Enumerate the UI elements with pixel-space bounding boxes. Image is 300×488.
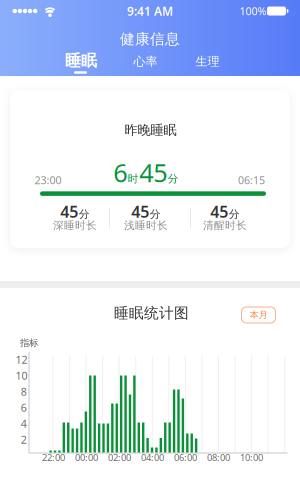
staticText: 本月: [249, 309, 267, 321]
staticText: 9:41 AM: [127, 3, 173, 19]
button[interactable]: 本月: [241, 307, 275, 323]
staticText: 6: [21, 400, 27, 415]
staticText: 100%: [239, 4, 266, 18]
staticText: 12: [15, 352, 27, 367]
staticText: 08:00: [207, 451, 230, 464]
staticText: 45: [60, 201, 78, 222]
staticText: 睡眠统计图: [114, 304, 189, 322]
staticText: 00:00: [75, 451, 98, 464]
button[interactable]: 睡眠: [67, 51, 95, 75]
staticText: 分: [79, 208, 90, 221]
staticText: 22:00: [42, 451, 65, 464]
staticText: 45: [131, 201, 149, 222]
staticText: 23:00: [34, 173, 61, 187]
staticText: 04:00: [141, 451, 164, 464]
staticText: 心率: [133, 54, 157, 69]
button[interactable]: 生理: [195, 54, 219, 69]
staticText: 健康信息: [120, 30, 180, 48]
staticText: 45: [139, 156, 167, 189]
staticText: 深睡时长: [53, 219, 97, 232]
staticText: 分: [168, 172, 179, 185]
staticText: 时: [128, 172, 139, 185]
staticText: 10: [15, 368, 27, 383]
staticText: 02:00: [108, 451, 131, 464]
staticText: 10:00: [240, 451, 263, 464]
staticText: 生理: [195, 54, 219, 69]
staticText: 4: [21, 416, 27, 431]
staticText: 45: [210, 201, 228, 222]
staticText: 睡眠: [65, 51, 97, 71]
staticText: 分: [150, 208, 161, 221]
staticText: 指标: [20, 337, 38, 349]
staticText: 8: [21, 384, 27, 399]
staticText: 6: [113, 156, 127, 189]
staticText: 清醒时长: [203, 219, 247, 232]
button[interactable]: 心率: [133, 54, 157, 69]
staticText: 2: [21, 432, 27, 447]
staticText: 浅睡时长: [124, 219, 168, 232]
staticText: 昨晚睡眠: [124, 122, 176, 138]
staticText: 分: [229, 208, 240, 221]
staticText: 06:15: [238, 173, 265, 187]
staticText: 06:00: [174, 451, 197, 464]
